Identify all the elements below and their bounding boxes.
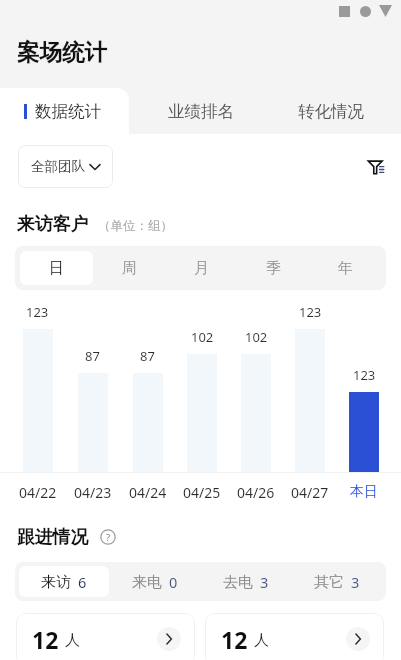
- button[interactable]: 转化情况: [272, 88, 390, 134]
- staticText: 123: [26, 303, 49, 321]
- staticText: 来访客户: [17, 213, 89, 235]
- staticText: 案场统计: [17, 38, 107, 66]
- staticText: ?: [106, 531, 111, 544]
- staticText: 转化情况: [298, 101, 364, 122]
- staticText: 04/27: [291, 483, 329, 502]
- staticText: 业绩排名: [168, 101, 234, 122]
- staticText: 87: [140, 347, 155, 365]
- button[interactable]: Help: [100, 529, 116, 545]
- staticText: 04/24: [129, 483, 167, 502]
- staticText: 3: [260, 572, 269, 592]
- button[interactable]: 12: [205, 613, 384, 660]
- button[interactable]: 数据统计: [0, 88, 129, 134]
- button[interactable]: 业绩排名: [129, 88, 272, 134]
- staticText: 月: [194, 259, 209, 278]
- staticText: 去电: [223, 573, 253, 592]
- staticText: 数据统计: [35, 101, 101, 122]
- button[interactable]: 日: [20, 251, 93, 285]
- staticText: 123: [299, 303, 322, 321]
- staticText: 04/25: [183, 483, 221, 502]
- staticText: 本日: [350, 483, 378, 501]
- staticText: 04/23: [74, 483, 112, 502]
- staticText: 周: [122, 259, 137, 278]
- staticText: 102: [191, 328, 214, 346]
- staticText: 12: [32, 624, 59, 655]
- staticText: 04/22: [19, 483, 57, 502]
- staticText: 12: [221, 624, 248, 655]
- staticText: 日: [49, 259, 64, 278]
- staticText: 跟进情况: [17, 526, 89, 548]
- staticText: 人: [254, 631, 269, 650]
- button[interactable]: 季: [237, 251, 309, 285]
- staticText: 季: [266, 259, 281, 278]
- button[interactable]: 去电: [200, 566, 291, 597]
- button[interactable]: 周: [93, 251, 165, 285]
- staticText: 87: [85, 347, 100, 365]
- staticText: 6: [78, 572, 87, 592]
- staticText: 人: [65, 631, 80, 650]
- staticText: 其它: [314, 573, 344, 592]
- staticText: 全部团队: [31, 158, 85, 175]
- button[interactable]: 月: [165, 251, 237, 285]
- button[interactable]: 全部团队: [18, 145, 113, 188]
- button[interactable]: Filter: [360, 145, 392, 188]
- button[interactable]: 来访: [19, 566, 109, 597]
- staticText: 0: [169, 572, 178, 592]
- button[interactable]: 来电: [109, 566, 200, 597]
- button[interactable]: 其它: [291, 566, 382, 597]
- staticText: （单位：组）: [98, 218, 173, 234]
- button[interactable]: 年: [309, 251, 381, 285]
- staticText: 年: [338, 259, 353, 278]
- staticText: 102: [245, 328, 268, 346]
- staticText: 来访: [41, 573, 71, 592]
- staticText: 04/26: [237, 483, 275, 502]
- staticText: 来电: [132, 573, 162, 592]
- button[interactable]: 12: [16, 613, 195, 660]
- staticText: 3: [351, 572, 360, 592]
- staticText: 123: [353, 366, 376, 384]
